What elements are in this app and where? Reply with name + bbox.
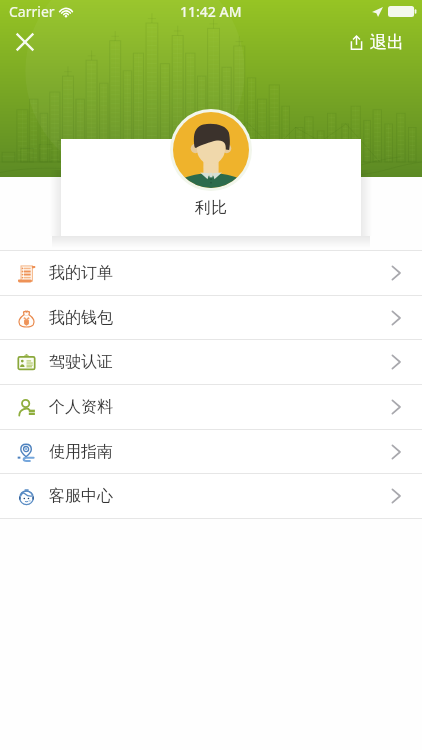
button[interactable]: 驾驶认证 [0,340,422,384]
button[interactable]: 个人资料 [0,385,422,429]
staticText: 我的钱包 [49,308,113,328]
staticText: Carrier [9,2,55,21]
button[interactable]: 我的钱包 [0,296,422,340]
staticText: 使用指南 [49,442,113,462]
button[interactable]: 使用指南 [0,430,422,474]
staticText: 个人资料 [49,397,113,417]
staticText: 驾驶认证 [49,352,113,372]
button[interactable]: Close [9,26,41,58]
button[interactable]: 客服中心 [0,474,422,518]
button[interactable]: Avatar [169,108,253,192]
button[interactable]: 我的订单 [0,251,422,295]
staticText: 利比 [195,198,227,218]
staticText: 退出 [370,32,404,53]
staticText: 11:42 AM [180,2,242,21]
staticText: 我的订单 [49,263,113,283]
staticText: 客服中心 [49,486,113,506]
button[interactable]: 退出 [349,32,404,53]
